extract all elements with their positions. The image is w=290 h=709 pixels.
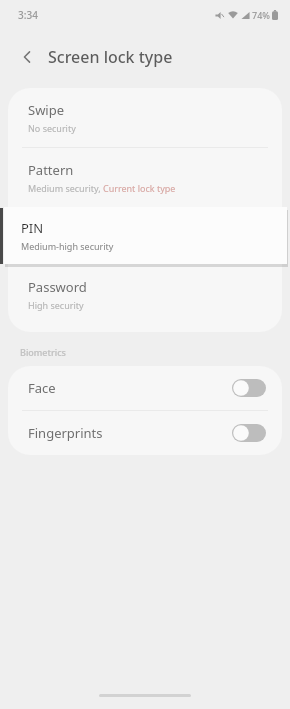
button[interactable]: Fingerprints	[8, 411, 282, 455]
button[interactable]: Pattern	[8, 148, 282, 207]
button[interactable]: Back	[10, 40, 44, 74]
button[interactable]: Password	[8, 265, 282, 324]
staticText: No security	[28, 122, 76, 134]
button[interactable]: Swipe	[8, 88, 282, 147]
staticText: Medium-high security	[21, 240, 114, 252]
button[interactable]: Toggle	[232, 424, 266, 442]
staticText: 3:34	[18, 8, 38, 22]
staticText: PIN	[21, 219, 44, 237]
staticText: Swipe	[28, 101, 65, 119]
staticText: 74%	[252, 9, 270, 21]
button[interactable]: Toggle	[232, 379, 266, 397]
staticText: Face	[28, 379, 56, 397]
staticText: Pattern	[28, 161, 74, 179]
staticText: Fingerprints	[28, 424, 103, 442]
staticText: Medium security, Current lock type	[28, 182, 176, 194]
staticText: Biometrics	[20, 346, 66, 358]
button[interactable]: PIN	[4, 207, 287, 264]
staticText: High security	[28, 299, 84, 311]
staticText: Password	[28, 278, 87, 296]
button[interactable]: Face	[8, 366, 282, 410]
staticText: Screen lock type	[48, 46, 173, 68]
